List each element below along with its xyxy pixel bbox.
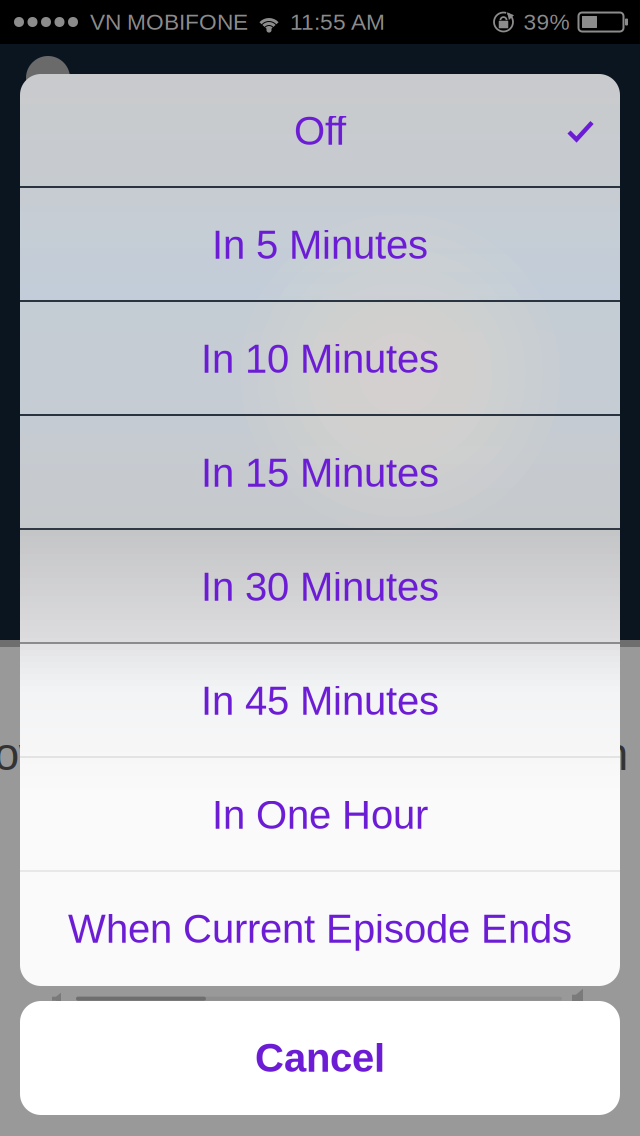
button[interactable]: In 45 Minutes bbox=[20, 644, 620, 758]
staticText: VN MOBIFONE bbox=[90, 9, 248, 35]
staticText: 39% bbox=[523, 9, 569, 35]
staticText: 11:55 AM bbox=[290, 9, 385, 35]
staticText: In 45 Minutes bbox=[201, 679, 439, 723]
staticText: In 5 Minutes bbox=[212, 223, 428, 267]
staticText: n 1 bbox=[603, 729, 640, 780]
staticText: Off bbox=[294, 109, 346, 153]
staticText: In 30 Minutes bbox=[201, 565, 439, 609]
staticText: When Current Episode Ends bbox=[68, 907, 572, 951]
button[interactable]: In 10 Minutes bbox=[20, 302, 620, 416]
button[interactable]: In 5 Minutes bbox=[20, 188, 620, 302]
staticText: In 10 Minutes bbox=[201, 337, 439, 381]
button[interactable]: Cancel bbox=[20, 1001, 620, 1115]
staticText: In 15 Minutes bbox=[201, 451, 439, 495]
button[interactable]: When Current Episode Ends bbox=[20, 872, 620, 986]
staticText: In One Hour bbox=[212, 793, 428, 837]
staticText: Cancel bbox=[255, 1036, 385, 1080]
button[interactable]: In 30 Minutes bbox=[20, 530, 620, 644]
button[interactable]: Off bbox=[20, 74, 620, 188]
staticText: ow bbox=[0, 729, 52, 780]
button[interactable]: In One Hour bbox=[20, 758, 620, 872]
button[interactable]: In 15 Minutes bbox=[20, 416, 620, 530]
